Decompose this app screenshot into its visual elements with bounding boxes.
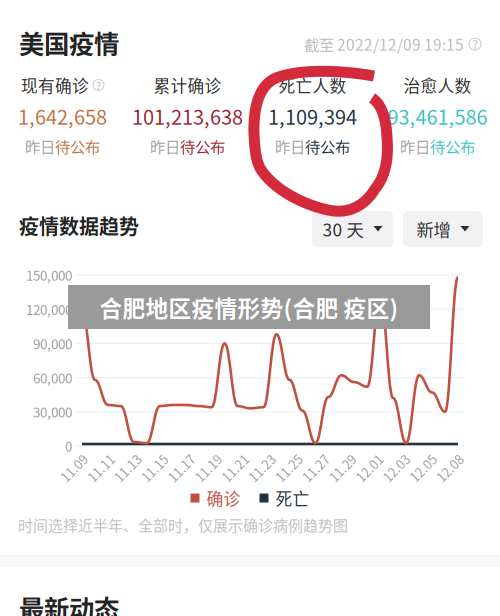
staticText: 12.03	[380, 459, 412, 477]
staticText: 11.09	[58, 459, 90, 477]
staticText: 11.25	[273, 459, 305, 477]
staticText: 11.19	[192, 459, 224, 477]
button[interactable]: 30 天	[312, 211, 393, 247]
staticText: 待公布	[55, 135, 100, 157]
staticText: 待公布	[180, 135, 225, 157]
staticText: 死亡	[275, 486, 309, 510]
staticText: 11.15	[139, 459, 171, 477]
staticText: 30 天	[322, 216, 363, 242]
staticText: 12.05	[407, 459, 439, 477]
staticText: 最新动态	[19, 589, 119, 616]
staticText: 11.29	[327, 459, 359, 477]
staticText: 现有确诊	[21, 73, 89, 97]
staticText: 死亡人数	[278, 73, 346, 97]
staticText: 累计确诊	[153, 73, 221, 97]
staticText: 11.27	[300, 459, 332, 477]
staticText: 11.13	[112, 459, 144, 477]
staticText: 1,109,394	[268, 101, 357, 130]
staticText: 合肥地区疫情形势(合肥 疫区)	[99, 291, 398, 323]
staticText: 昨日	[25, 135, 55, 157]
staticText: 待公布	[305, 135, 350, 157]
staticText: 美国疫情	[19, 24, 119, 61]
staticText: ?	[472, 36, 477, 52]
staticText: 昨日	[400, 135, 430, 157]
staticText: 101,213,638	[132, 101, 243, 130]
staticText: 截至 2022/12/09 19:15	[304, 33, 464, 55]
button[interactable]: 新增	[403, 211, 483, 247]
staticText: 昨日	[150, 135, 180, 157]
staticText: 1,642,658	[18, 101, 107, 130]
staticText: ?	[96, 77, 101, 93]
staticText: 11.11	[85, 459, 117, 477]
staticText: 昨日	[275, 135, 305, 157]
staticText: 治愈人数	[403, 73, 471, 97]
staticText: 93,461,586	[387, 101, 487, 130]
button[interactable]: 截至 2022/12/09 19:15	[304, 33, 481, 55]
staticText: 疫情数据趋势	[19, 211, 139, 240]
staticText: 30,000	[33, 402, 72, 421]
staticText: 11.23	[246, 459, 278, 477]
staticText: 待公布	[430, 135, 475, 157]
staticText: 12.08	[434, 459, 466, 477]
staticText: 60,000	[33, 368, 72, 387]
staticText: 0	[65, 436, 72, 456]
staticText: 时间选择近半年、全部时，仅展示确诊病例趋势图	[18, 514, 348, 536]
staticText: 150,000	[26, 265, 72, 285]
staticText: 确诊	[206, 486, 240, 510]
staticText: 12.01	[353, 459, 385, 477]
staticText: 90,000	[33, 334, 72, 353]
staticText: 新增	[416, 216, 450, 242]
staticText: 120,000	[26, 299, 72, 319]
staticText: 11.21	[219, 459, 251, 477]
staticText: 11.17	[165, 459, 197, 477]
